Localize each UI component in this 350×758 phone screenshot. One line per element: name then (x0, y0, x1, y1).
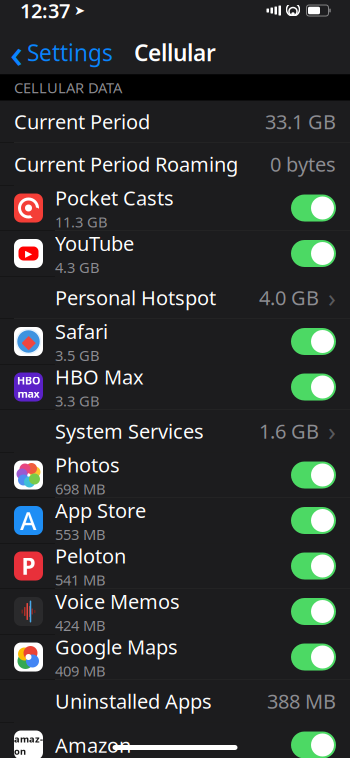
staticText: CELLULAR DATA (14, 78, 122, 97)
staticText: Current Period (14, 108, 150, 135)
staticText: 3.3 GB (55, 391, 100, 410)
staticText: Safari (55, 318, 108, 345)
staticText: HBO (17, 373, 40, 387)
staticText: 698 MB (55, 479, 106, 498)
staticText: 388 MB (267, 688, 336, 714)
staticText: 12:37 (20, 0, 70, 24)
button[interactable]: Personal Hotspot (0, 276, 350, 318)
staticText: › (328, 281, 336, 314)
button[interactable]: Cellular data for Photos (291, 461, 336, 488)
staticText: Cellular (134, 37, 216, 67)
staticText: Voice Memos (55, 588, 180, 615)
staticText: HBO Max (55, 363, 144, 390)
staticText: Uninstalled Apps (55, 688, 212, 714)
staticText: 4.0 GB (259, 284, 319, 311)
staticText: 541 MB (55, 570, 106, 589)
button[interactable]: Current Period (0, 100, 350, 142)
button[interactable]: Cellular data for Pocket Casts (291, 194, 336, 221)
staticText: 553 MB (55, 524, 106, 544)
staticText: ‹ (10, 26, 23, 79)
staticText: Personal Hotspot (55, 284, 216, 311)
staticText: Photos (55, 451, 120, 478)
button[interactable]: Cellular data for Google Maps (291, 643, 336, 670)
staticText: Current Period Roaming (14, 151, 238, 177)
staticText: System Services (55, 418, 204, 444)
button[interactable]: Cellular data for Voice Memos (291, 598, 336, 625)
staticText: ➤ (74, 3, 85, 18)
button[interactable]: Cellular data for YouTube (291, 240, 336, 267)
button[interactable]: Current Period Roaming (0, 143, 350, 185)
staticText: Pocket Casts (55, 184, 174, 211)
staticText: 424 MB (55, 615, 106, 635)
staticText: Settings (27, 37, 113, 67)
button[interactable]: Cellular data for Peloton (291, 552, 336, 579)
staticText: A (20, 504, 37, 537)
staticText: 1.6 GB (259, 418, 319, 444)
staticText: Google Maps (55, 633, 178, 660)
staticText: 33.1 GB (265, 108, 336, 135)
staticText: Peloton (55, 542, 126, 569)
staticText: max (17, 386, 39, 401)
button[interactable]: Uninstalled Apps (0, 680, 350, 722)
staticText: 11.3 GB (55, 212, 108, 231)
button[interactable]: System Services (0, 410, 350, 452)
button[interactable]: Cellular data for Amazon (291, 731, 336, 758)
staticText: App Store (55, 497, 146, 524)
staticText: 0 bytes (270, 151, 336, 177)
staticText: › (328, 414, 336, 448)
staticText: ◆ (21, 331, 35, 352)
staticText: 4.3 GB (55, 257, 100, 277)
button[interactable]: Cellular data for App Store (291, 507, 336, 534)
button[interactable]: Cellular data for Safari (291, 328, 336, 355)
staticText: 409 MB (55, 661, 106, 680)
staticText: amazon (14, 733, 43, 757)
staticText: P (21, 551, 35, 581)
staticText: Amazon (55, 732, 131, 758)
button[interactable]: Cellular data for HBO Max (291, 373, 336, 400)
staticText: YouTube (55, 230, 134, 257)
button[interactable]: ‹ (0, 30, 123, 74)
staticText: ▶ (25, 248, 32, 259)
staticText: 3.5 GB (55, 345, 100, 365)
